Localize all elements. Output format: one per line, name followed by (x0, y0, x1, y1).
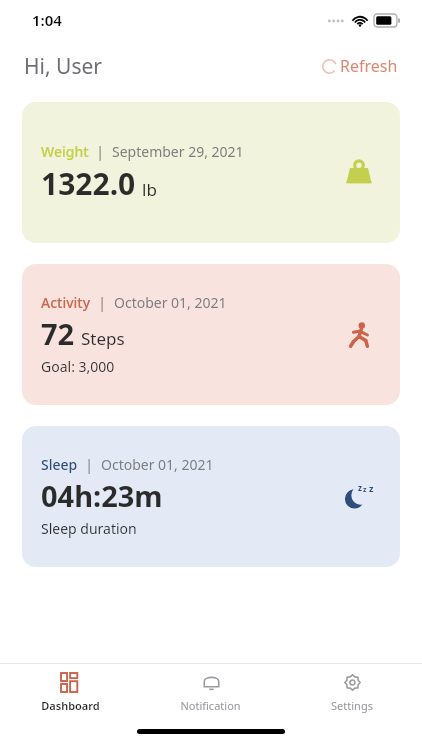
button[interactable]: Weight (22, 102, 400, 243)
staticText: Sleep duration (41, 519, 137, 538)
staticText: 72 (41, 314, 75, 353)
other: Weight (342, 156, 376, 190)
button[interactable]: Activity (22, 264, 400, 405)
staticText: Activity (41, 293, 91, 312)
staticText: 1322.0 (41, 163, 136, 204)
button[interactable]: Dashboard (0, 664, 140, 720)
staticText: | (91, 293, 114, 312)
staticText: Dashboard (41, 698, 100, 713)
staticText: October 01, 2021 (114, 293, 227, 312)
staticText: Goal: 3,000 (41, 357, 115, 376)
staticText: Refresh (340, 55, 398, 77)
staticText: Notification (180, 698, 241, 713)
other: Activity (342, 318, 376, 352)
button[interactable]: Refresh (322, 55, 398, 77)
staticText: Steps (81, 327, 125, 350)
button[interactable]: Sleep (22, 426, 400, 567)
staticText: z (369, 482, 374, 494)
staticText: 04h:23m (41, 476, 163, 515)
button[interactable]: Notification (140, 664, 281, 720)
staticText: | (78, 455, 101, 474)
other: Sleep (342, 480, 376, 514)
staticText: September 29, 2021 (112, 142, 244, 161)
staticText: | (89, 142, 112, 161)
staticText: Weight (41, 142, 89, 161)
staticText: Sleep (41, 455, 78, 474)
staticText: Settings (331, 698, 373, 713)
staticText: z (363, 485, 367, 495)
staticText: October 01, 2021 (101, 455, 214, 474)
staticText: lb (142, 178, 157, 201)
staticText: z (358, 482, 362, 493)
button[interactable]: Settings (281, 664, 422, 720)
staticText: Hi, User (24, 52, 102, 81)
staticText: 1:04 (32, 10, 62, 30)
